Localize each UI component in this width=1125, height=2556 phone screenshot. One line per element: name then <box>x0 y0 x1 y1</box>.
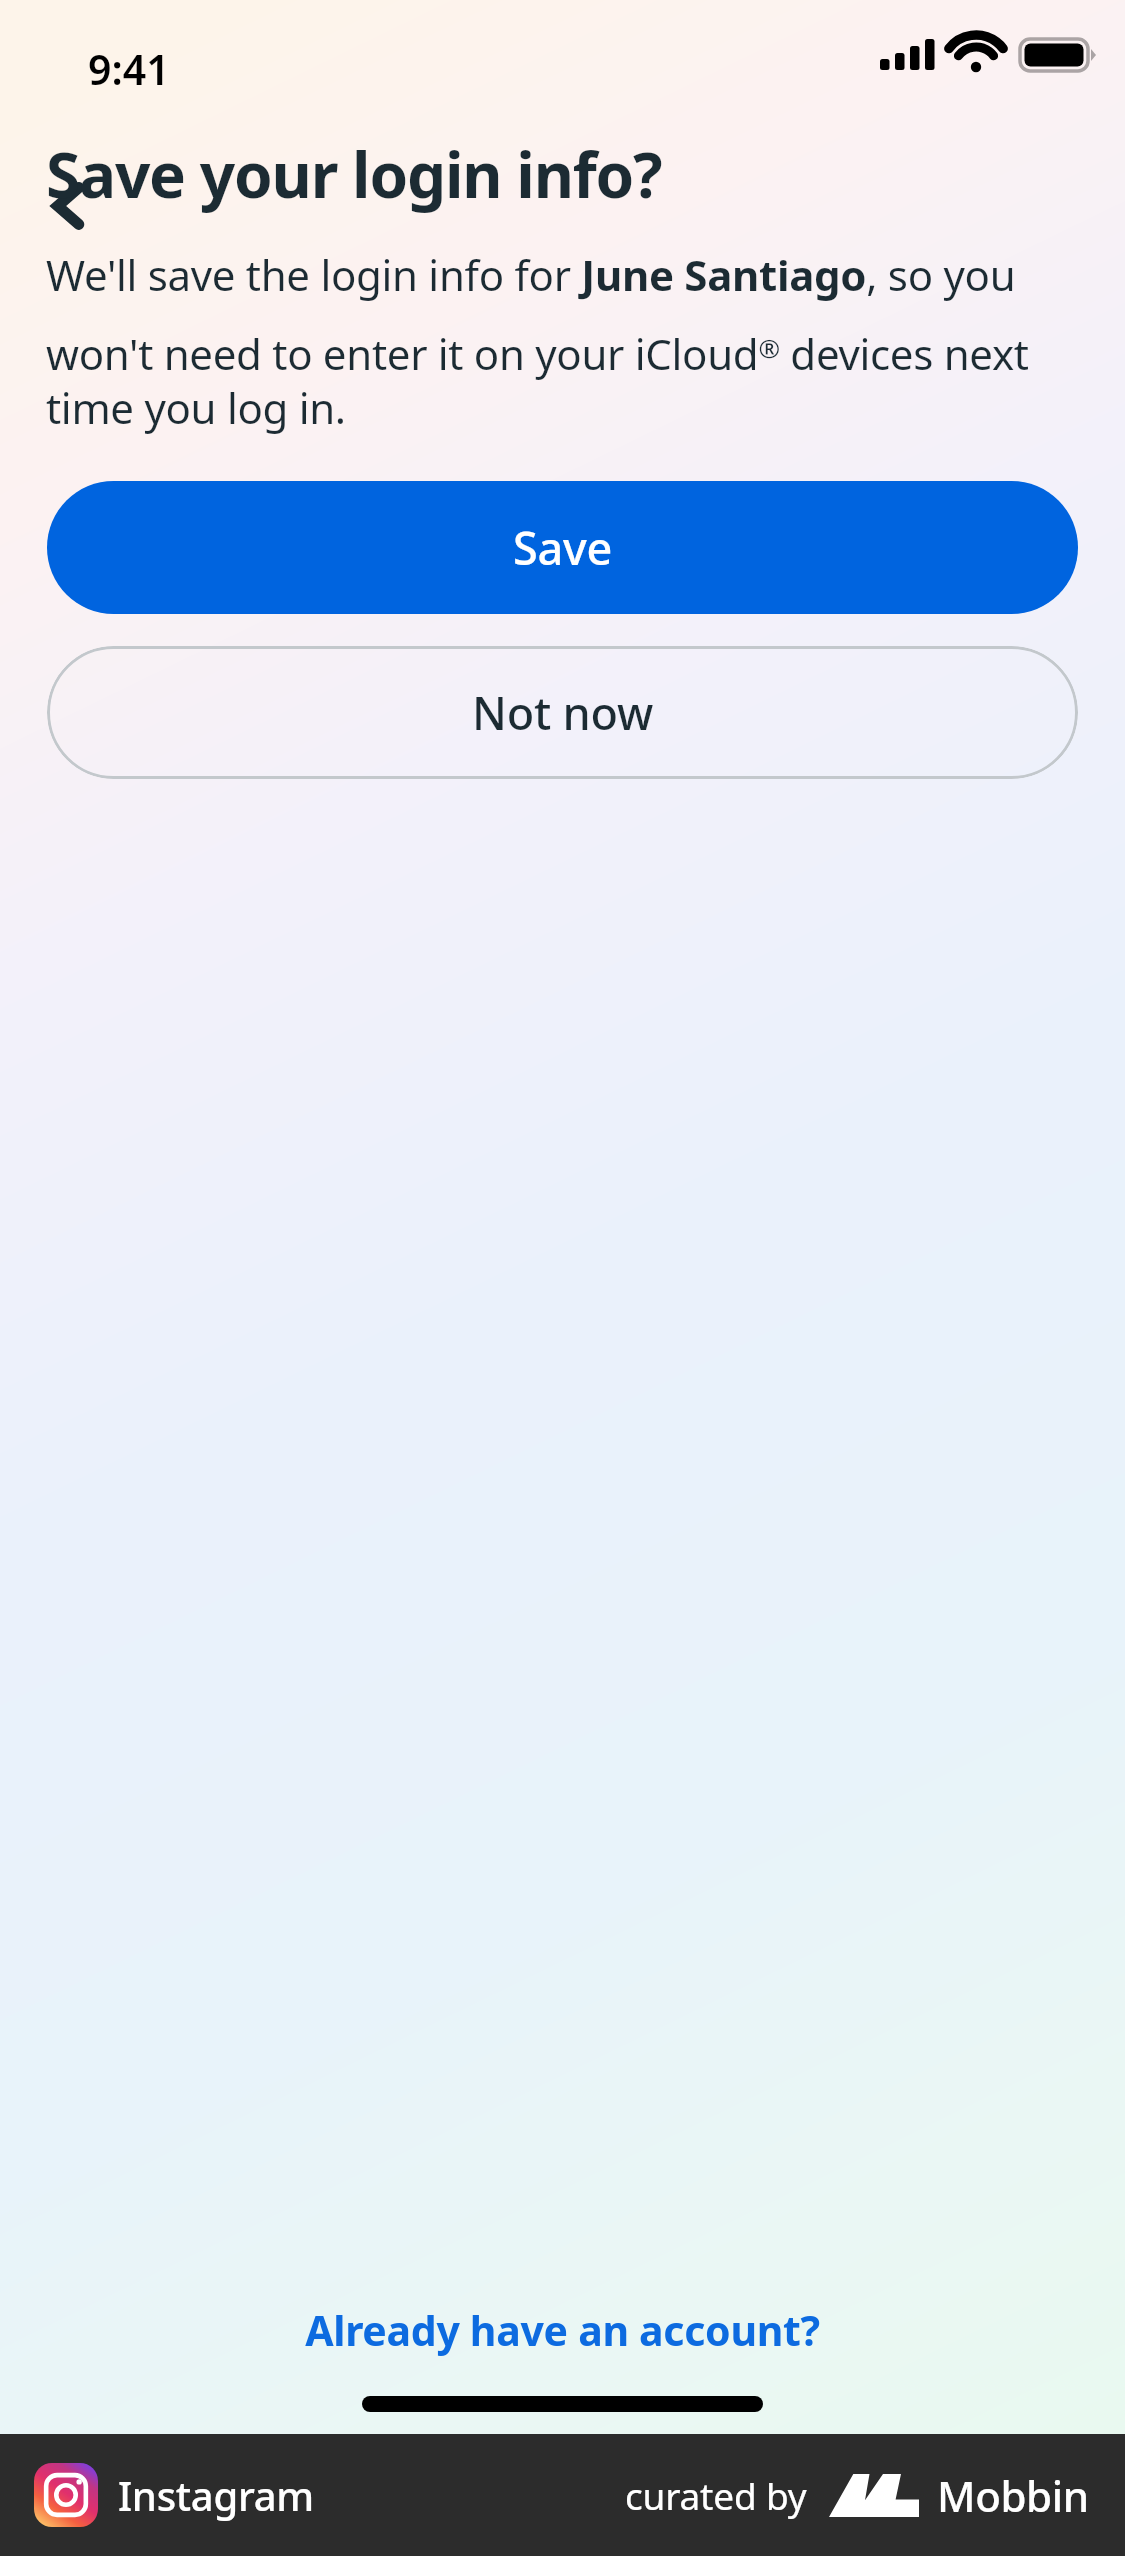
button[interactable]: Already have an account? <box>40 2282 1085 2378</box>
staticText: 9:41 <box>88 41 170 97</box>
staticText: curated by <box>625 2470 807 2520</box>
staticText: Instagram <box>118 2468 314 2522</box>
button[interactable]: Save <box>47 481 1078 614</box>
staticText: Save <box>513 517 613 578</box>
staticText: Save your login info? <box>46 132 662 216</box>
button[interactable]: Back <box>22 158 118 254</box>
button[interactable]: Not now <box>47 646 1078 779</box>
staticText: Already have an account? <box>305 2302 820 2358</box>
staticText: Not now <box>472 682 654 743</box>
staticText: We'll save the login info for June Santi… <box>46 246 1081 437</box>
staticText: Mobbin <box>937 2467 1089 2524</box>
